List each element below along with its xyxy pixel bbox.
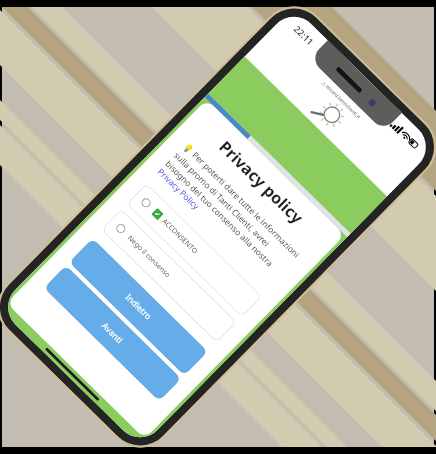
staticText: 22:11: [292, 23, 317, 48]
button[interactable]: Privacy Policy: [155, 166, 202, 212]
button[interactable]: Avanti: [44, 265, 182, 401]
staticText: Nego il consenso: [125, 233, 173, 280]
staticText: Privacy policy: [196, 117, 327, 247]
staticText: 💡 Per poterti dare tutte le informazioni…: [163, 140, 304, 279]
staticText: ✔: [153, 210, 162, 219]
button[interactable]: Nego il consenso: [101, 209, 237, 343]
staticText: Avanti: [99, 320, 126, 347]
button[interactable]: ✔: [126, 183, 262, 317]
button[interactable]: Indietro: [69, 238, 208, 376]
staticText: ACCONSENTO: [160, 217, 199, 256]
staticText: Tanti: [295, 103, 316, 124]
staticText: △ wizard.tanticlienti.it: [320, 80, 362, 121]
staticText: Indietro: [123, 291, 154, 322]
staticText: Clienti: [314, 121, 340, 147]
